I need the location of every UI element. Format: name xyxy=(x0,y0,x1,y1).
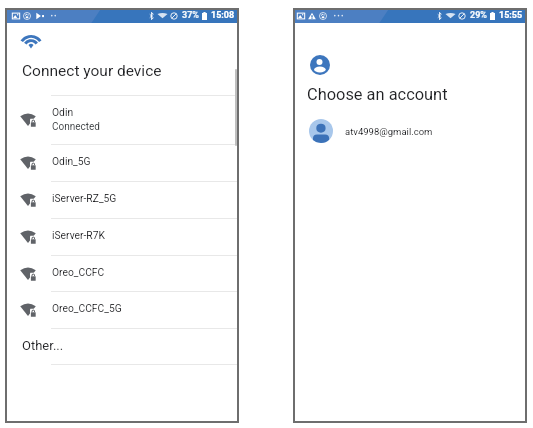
staticText: Odin_5G xyxy=(52,155,91,167)
button[interactable]: iServer-RZ_5G xyxy=(5,181,239,218)
staticText: Other... xyxy=(22,338,64,353)
staticText: 15:08 xyxy=(211,10,235,21)
staticText: 29% xyxy=(470,10,487,21)
staticText: Connect your device xyxy=(22,62,162,80)
button[interactable]: Odin xyxy=(5,95,239,144)
other: Account xyxy=(310,55,330,75)
staticText: 37% xyxy=(182,10,199,21)
staticText: Oreo_CCFC xyxy=(52,266,105,278)
button[interactable]: Other... xyxy=(5,328,239,365)
staticText: Choose an account xyxy=(307,85,448,104)
button[interactable]: iServer-R7K xyxy=(5,218,239,255)
staticText: Odin xyxy=(52,106,74,118)
button[interactable]: Oreo_CCFC_5G xyxy=(5,291,239,328)
staticText: atv4998@gmail.com xyxy=(345,126,433,137)
staticText: iServer-RZ_5G xyxy=(52,192,117,204)
button[interactable]: atv4998@gmail.com xyxy=(293,116,527,146)
staticText: Connected xyxy=(52,121,101,133)
staticText: iServer-R7K xyxy=(52,229,105,241)
button[interactable]: Odin_5G xyxy=(5,144,239,181)
staticText: Oreo_CCFC_5G xyxy=(52,302,122,314)
staticText: 15:55 xyxy=(499,10,523,21)
button[interactable]: Oreo_CCFC xyxy=(5,255,239,292)
other: Wi-Fi xyxy=(21,33,41,48)
